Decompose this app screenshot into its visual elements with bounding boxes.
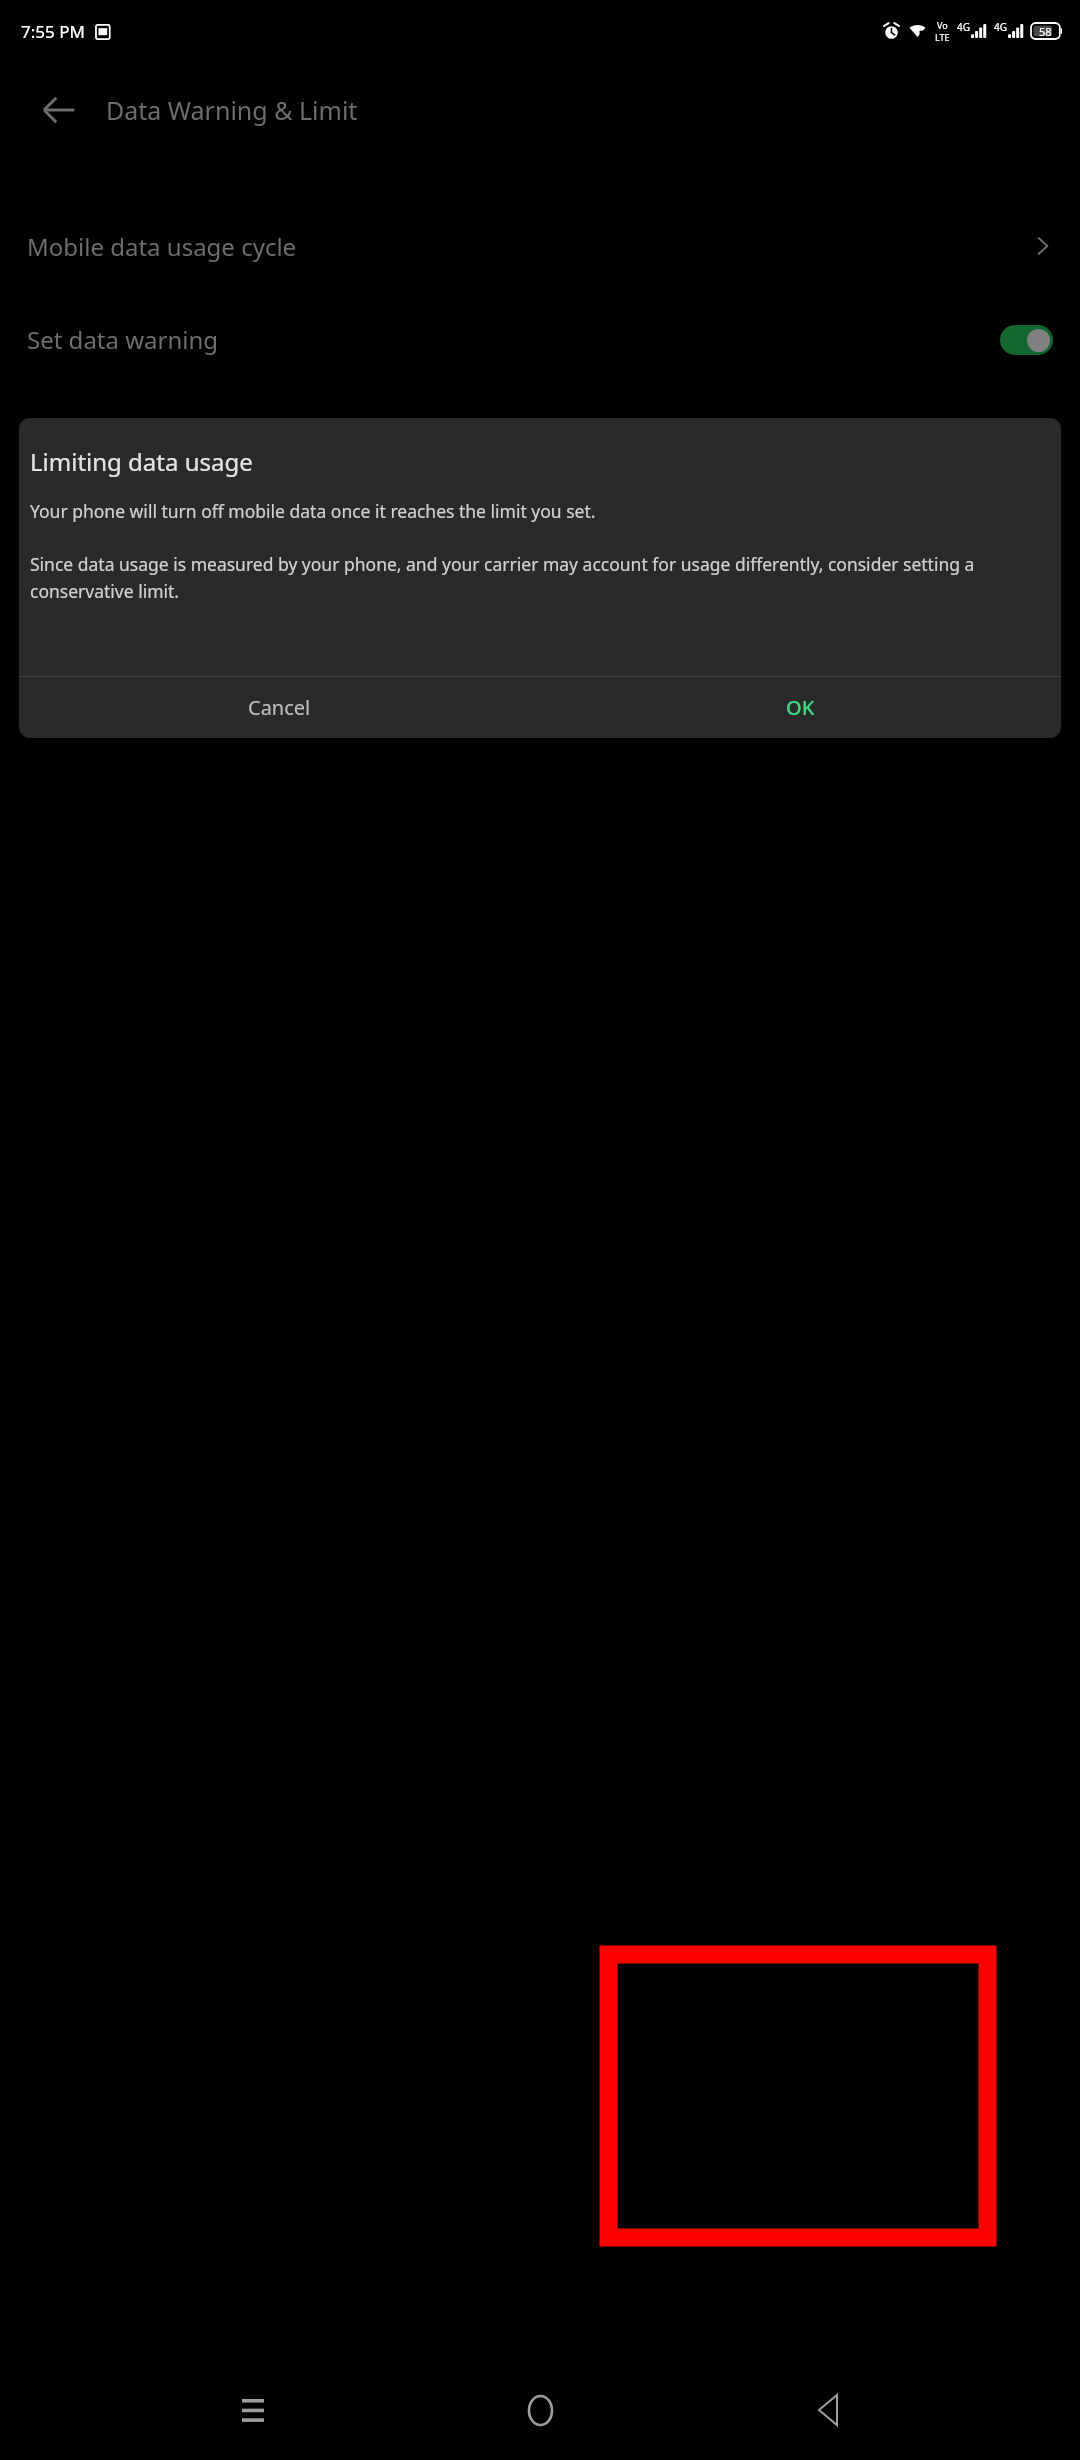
staticText: Your phone will turn off mobile data onc…: [30, 499, 1049, 603]
staticText: 58: [1039, 24, 1052, 39]
staticText: Set data limit: [27, 533, 175, 566]
staticText: 7:55 PM: [21, 20, 85, 43]
staticText: OK: [786, 694, 815, 721]
button[interactable]: Back: [33, 84, 85, 136]
staticText: Vo: [937, 19, 948, 31]
staticText: 2.00 GB: [27, 453, 89, 476]
button[interactable]: Mobile data usage cycle: [0, 205, 1080, 287]
staticText: Mobile data usage cycle: [27, 230, 297, 263]
staticText: Set data warning: [27, 323, 219, 356]
button[interactable]: Recent apps: [218, 2375, 288, 2445]
staticText: Data warning: [27, 414, 180, 447]
staticText: 4G: [994, 20, 1007, 34]
staticText: 4G: [957, 20, 970, 34]
button[interactable]: Cancel: [19, 677, 540, 738]
button[interactable]: Data warning: [0, 392, 1080, 497]
staticText: Limiting data usage: [30, 445, 253, 478]
button[interactable]: Set data warning: [0, 287, 1080, 392]
button[interactable]: Set data limit: [0, 497, 1080, 602]
button[interactable]: Back: [793, 2375, 863, 2445]
button[interactable]: OK: [540, 677, 1061, 738]
staticText: LTE: [935, 31, 950, 43]
staticText: Cancel: [248, 694, 311, 721]
staticText: Data Warning & Limit: [106, 93, 358, 127]
button[interactable]: Home: [505, 2375, 575, 2445]
button[interactable]: Set data warning: [1000, 325, 1053, 355]
